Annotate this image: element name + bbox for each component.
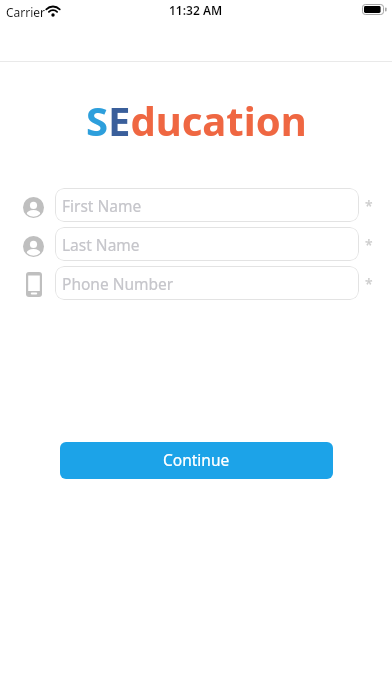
staticText: SEducation: [86, 93, 307, 147]
staticText: *: [365, 274, 373, 293]
button[interactable]: First Name: [55, 188, 359, 222]
staticText: First Name: [62, 195, 142, 216]
staticText: Phone Number: [62, 273, 174, 294]
staticText: 11:32 AM: [169, 2, 223, 18]
button[interactable]: Phone Number: [55, 266, 359, 300]
button[interactable]: Last Name: [55, 227, 359, 261]
staticText: Carrier: [6, 4, 46, 20]
staticText: Last Name: [62, 234, 140, 255]
staticText: Continue: [163, 449, 230, 470]
staticText: *: [365, 196, 373, 215]
staticText: *: [365, 235, 373, 254]
button[interactable]: Continue: [60, 442, 333, 479]
